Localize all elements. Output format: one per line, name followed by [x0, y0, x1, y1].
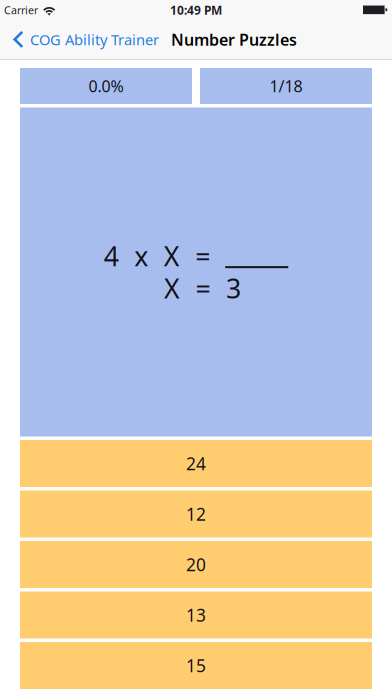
staticText: 13 — [186, 603, 206, 626]
staticText: Carrier — [4, 3, 38, 17]
staticText: COG Ability Trainer — [30, 30, 159, 49]
button[interactable]: 0.0% — [20, 68, 192, 104]
staticText: 10:49 PM — [170, 2, 222, 18]
button[interactable]: 1/18 — [200, 68, 372, 104]
staticText: 15 — [186, 654, 206, 677]
button[interactable]: COG Ability Trainer — [0, 20, 163, 59]
staticText: 24 — [186, 452, 206, 475]
staticText: 4 x X = — [104, 238, 210, 273]
button[interactable]: 24 — [20, 440, 372, 487]
button[interactable]: 12 — [20, 490, 372, 537]
button[interactable]: 20 — [20, 541, 372, 588]
button[interactable]: 15 — [20, 642, 372, 689]
button[interactable]: 13 — [20, 591, 372, 638]
staticText: 20 — [186, 553, 206, 576]
staticText: Number Puzzles — [171, 29, 297, 50]
staticText: 12 — [186, 502, 206, 525]
staticText: 0.0% — [88, 75, 123, 97]
staticText: X = 3 — [164, 270, 241, 306]
staticText: 1/18 — [269, 75, 302, 97]
